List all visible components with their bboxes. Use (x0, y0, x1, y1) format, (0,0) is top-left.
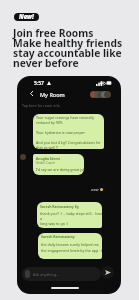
staticText: 5:57 (34, 80, 44, 87)
staticText: the daily lessons surely helped me , lov… (41, 242, 102, 253)
button[interactable]: Your sugar cravings have naturally reduc… (33, 114, 104, 149)
staticText: thank you!! :) ... baby steps still... h… (40, 211, 102, 226)
button[interactable] (90, 91, 108, 99)
staticText: Anugha Idemi (36, 156, 60, 161)
button[interactable]: Suresh Ramaswamy Eg (37, 202, 102, 228)
staticText: Join free Rooms Make healthy friends sta… (13, 26, 123, 70)
button[interactable]: New! (14, 13, 39, 21)
staticText: Ask anything... (33, 272, 60, 277)
staticText: Suresh Ramaswamy Eg (40, 204, 79, 209)
staticText: wow (91, 187, 99, 192)
staticText: Your sugar cravings have naturally reduc… (36, 115, 101, 149)
button[interactable] (20, 154, 26, 160)
staticText: I'd say we are doing great job! (36, 167, 84, 172)
button[interactable]: Ask anything... (22, 267, 101, 281)
staticText: Suresh Ramaswamy (41, 234, 75, 239)
staticText: Health Coach (36, 161, 55, 165)
staticText: New! (19, 13, 34, 21)
button[interactable]: My Room (40, 91, 65, 98)
button[interactable]: Suresh Ramaswamy (38, 233, 102, 259)
button[interactable]: Send (101, 266, 114, 279)
button[interactable]: Anugha Idemi (33, 154, 84, 175)
button[interactable]: Back (27, 89, 35, 97)
button[interactable]: Tap here for room info (22, 103, 60, 108)
